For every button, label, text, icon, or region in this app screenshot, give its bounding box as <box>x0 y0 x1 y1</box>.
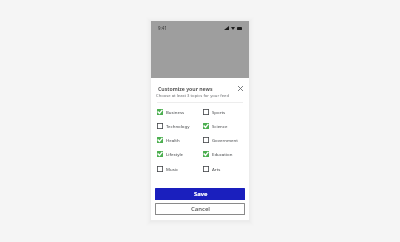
button[interactable]: Business <box>157 108 201 116</box>
staticText: Customize your news <box>158 85 213 92</box>
staticText: Health <box>166 137 180 143</box>
staticText: Arts <box>212 166 221 172</box>
button[interactable]: Cancel <box>155 203 245 215</box>
button[interactable]: Close <box>235 83 245 93</box>
staticText: Choose at least 3 topics for your feed <box>156 93 230 99</box>
button[interactable]: Arts <box>203 165 247 173</box>
staticText: Save <box>194 190 208 198</box>
staticText: Education <box>212 151 233 157</box>
button[interactable]: Government <box>203 136 247 144</box>
staticText: Sports <box>212 109 226 115</box>
staticText: Music <box>166 166 178 172</box>
button[interactable]: Technology <box>157 122 201 130</box>
staticText: Technology <box>166 123 190 129</box>
button[interactable]: Sports <box>203 108 247 116</box>
staticText: Government <box>212 137 238 143</box>
staticText: Business <box>166 109 185 115</box>
button[interactable]: Save <box>155 188 245 200</box>
button[interactable]: Health <box>157 136 201 144</box>
staticText: Cancel <box>191 205 211 213</box>
button[interactable]: Education <box>203 150 247 158</box>
button[interactable]: Music <box>157 165 201 173</box>
staticText: 9:41 <box>158 25 167 31</box>
button[interactable]: Science <box>203 122 247 130</box>
button[interactable]: Lifestyle <box>157 150 201 158</box>
staticText: Lifestyle <box>166 151 184 157</box>
staticText: Science <box>212 123 228 129</box>
